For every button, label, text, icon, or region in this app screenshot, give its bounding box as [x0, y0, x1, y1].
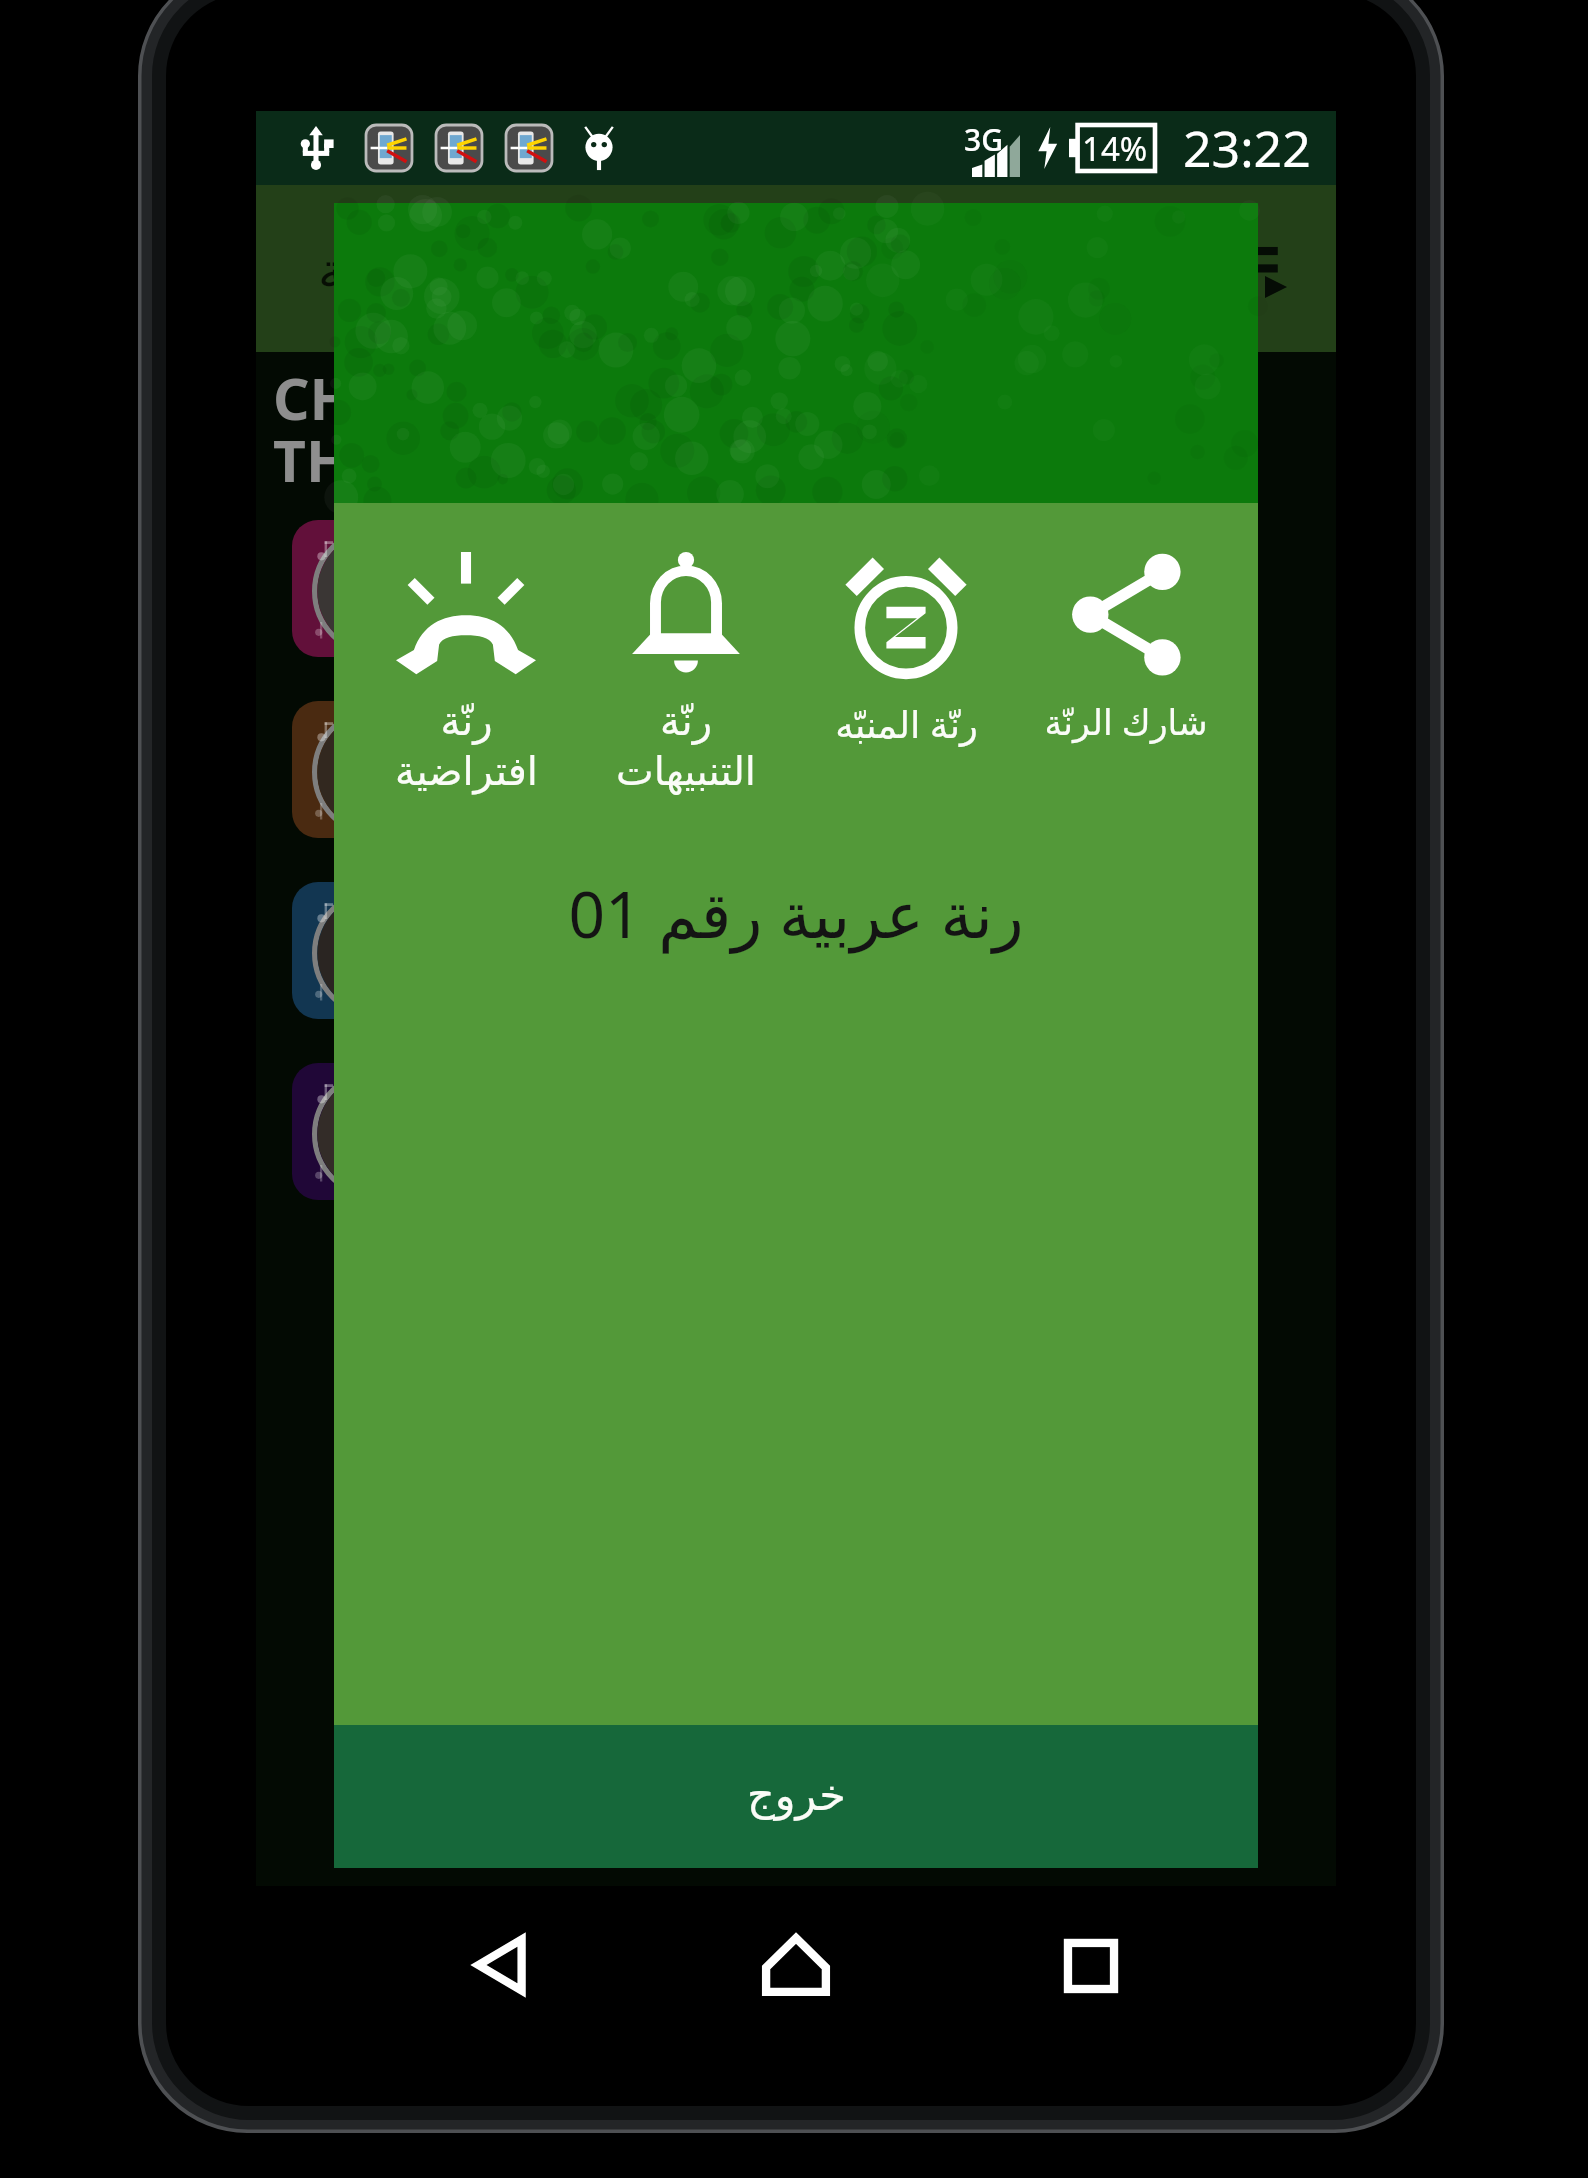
staticText: رنّة افتراضية — [395, 698, 538, 794]
button[interactable]: Alarm tone — [808, 552, 1004, 748]
staticText: رنة عربية رقم 01 — [334, 870, 1258, 957]
button[interactable]: Notification tone — [588, 552, 784, 794]
button[interactable] — [292, 498, 1336, 679]
staticText: شارك الرنّة — [1044, 698, 1208, 746]
button[interactable]: Recents — [1042, 1916, 1140, 2014]
button[interactable] — [292, 1041, 1336, 1222]
button[interactable]: Home — [747, 1916, 845, 2014]
staticText: رنّة التنبيهات — [616, 698, 756, 794]
staticText: خروج — [747, 1770, 846, 1820]
button[interactable]: Play list — [1236, 240, 1294, 298]
button[interactable] — [292, 860, 1336, 1041]
staticText: CHECK OUT THESE — [273, 359, 596, 498]
button[interactable]: Back — [453, 1916, 551, 2014]
button[interactable]: خروج — [334, 1725, 1258, 1868]
button[interactable]: Default ringtone — [368, 552, 564, 794]
button[interactable] — [292, 679, 1336, 860]
staticText: 23:22 — [1183, 114, 1311, 182]
staticText: 3G — [964, 119, 1003, 160]
staticText: رنات و نغمات عربية — [318, 235, 724, 303]
staticText: 14% — [1082, 126, 1148, 171]
staticText: رنّة المنبّه — [835, 698, 978, 748]
button[interactable]: Share ringtone — [1028, 552, 1224, 746]
